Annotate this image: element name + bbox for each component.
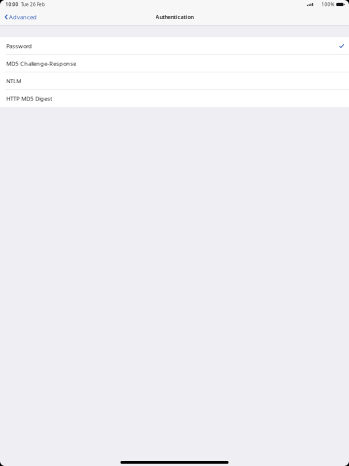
staticText: HTTP MD5 Digest (6, 95, 52, 102)
staticText: 10:00 (5, 1, 18, 7)
staticText: Authentication (155, 13, 193, 21)
staticText: 100% (322, 1, 335, 7)
staticText: Advanced (9, 13, 37, 21)
button[interactable]: Password (0, 37, 349, 54)
staticText: NTLM (6, 77, 21, 85)
button[interactable]: HTTP MD5 Digest (0, 90, 349, 107)
staticText: MD5 Challenge-Response (6, 60, 76, 67)
button[interactable]: MD5 Challenge-Response (0, 55, 349, 72)
staticText: Password (6, 42, 32, 50)
staticText: Tue 26 Feb (21, 1, 45, 7)
button[interactable]: NTLM (0, 72, 349, 89)
button[interactable]: Advanced (0, 9, 41, 25)
